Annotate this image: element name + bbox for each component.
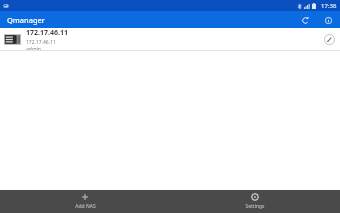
button[interactable]: Refresh: [298, 13, 312, 27]
staticText: Qmanager: [7, 15, 45, 25]
button[interactable]: Edit: [322, 32, 336, 46]
staticText: 172.17.46.11: [26, 28, 68, 38]
staticText: 17:36: [321, 2, 337, 10]
button[interactable]: Add NAS: [0, 190, 170, 213]
staticText: Settings: [245, 203, 265, 210]
button[interactable]: 172.17.46.11: [0, 28, 340, 50]
button[interactable]: Settings: [170, 190, 340, 213]
staticText: 172.17.46.11: [26, 39, 56, 46]
button[interactable]: Information: [321, 13, 335, 27]
staticText: admin: [26, 46, 41, 50]
staticText: Add NAS: [75, 203, 96, 210]
